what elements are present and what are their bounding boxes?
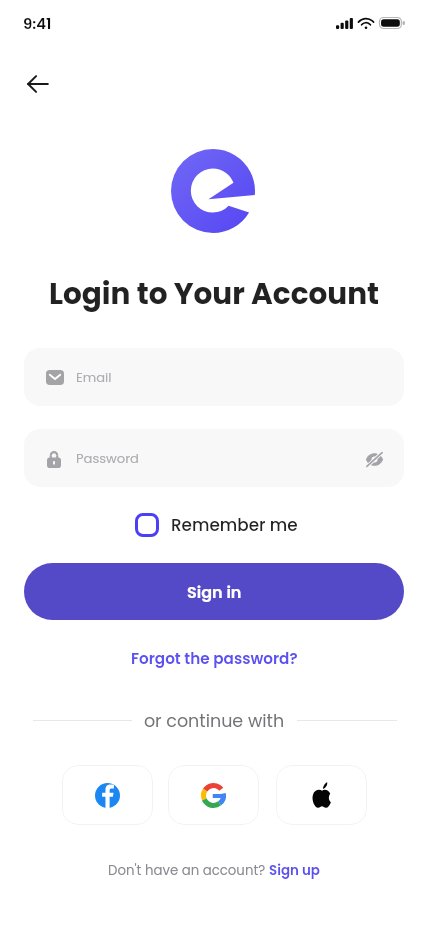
button[interactable]: Continue with Google: [168, 765, 259, 825]
button[interactable]: Password: [24, 429, 404, 487]
button[interactable]: Show password: [359, 444, 389, 474]
button[interactable]: Sign in: [24, 563, 404, 620]
staticText: Don't have an account?: [108, 861, 269, 880]
button[interactable]: Remember me: [134, 512, 298, 538]
staticText: Login to Your Account: [0, 273, 428, 314]
staticText: Sign up: [269, 861, 320, 880]
button[interactable]: Forgot the password?: [114, 645, 314, 671]
staticText: or continue with: [0, 709, 428, 734]
staticText: Sign in: [187, 581, 242, 603]
staticText: Forgot the password?: [131, 648, 298, 669]
button[interactable]: Email: [24, 348, 404, 406]
staticText: Remember me: [171, 513, 298, 537]
button[interactable]: Back: [14, 60, 62, 108]
staticText: Email: [76, 368, 112, 386]
button[interactable]: Continue with Facebook: [62, 765, 153, 825]
staticText: 9:41: [23, 13, 52, 34]
button[interactable]: Continue with Apple: [276, 765, 367, 825]
staticText: Password: [76, 449, 139, 467]
button[interactable]: Sign up: [269, 861, 320, 880]
